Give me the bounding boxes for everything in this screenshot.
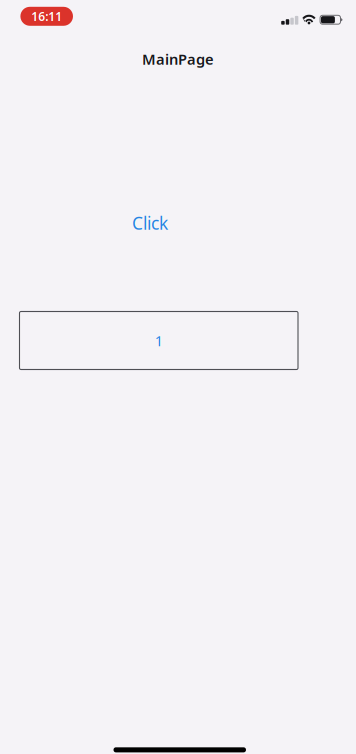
- staticText: 1: [155, 331, 163, 350]
- staticText: Click: [132, 211, 168, 234]
- staticText: 16:11: [31, 8, 62, 24]
- staticText: MainPage: [142, 49, 214, 69]
- button[interactable]: 1: [19, 311, 298, 369]
- button[interactable]: Click: [0, 210, 300, 236]
